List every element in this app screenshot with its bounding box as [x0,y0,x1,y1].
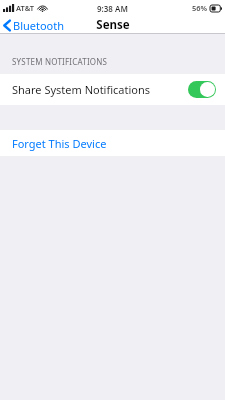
staticText: SYSTEM NOTIFICATIONS [12,56,108,67]
staticText: Bluetooth [13,18,65,33]
staticText: 56% [192,3,208,13]
staticText: 9:38 AM [97,3,128,14]
button[interactable]: Share System Notifications toggle, on [188,81,216,98]
button[interactable]: Share System Notifications [0,74,225,105]
staticText: Sense [96,17,130,33]
staticText: Share System Notifications [12,82,151,97]
staticText: AT&T [16,3,35,13]
staticText: Forget This Device [12,136,107,151]
button[interactable]: Forget This Device [0,130,225,156]
button[interactable]: Bluetooth [0,16,69,34]
